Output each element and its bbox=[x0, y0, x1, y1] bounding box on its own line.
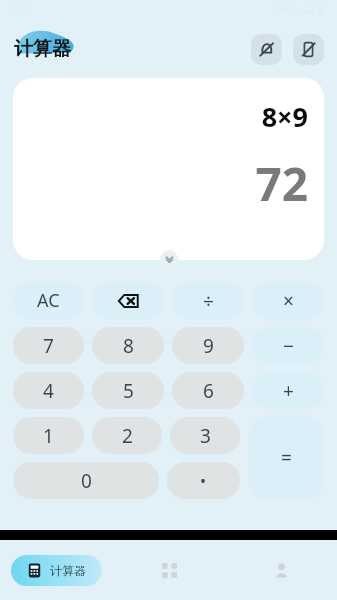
staticText: 2 bbox=[122, 423, 133, 449]
staticText: + bbox=[283, 378, 294, 404]
staticText: = bbox=[281, 445, 292, 471]
button[interactable]: 7 bbox=[13, 327, 84, 364]
button[interactable]: Mute bbox=[251, 34, 282, 65]
button[interactable]: 0 bbox=[13, 462, 159, 499]
staticText: • bbox=[200, 470, 207, 492]
staticText: 9 bbox=[203, 333, 214, 359]
staticText: AC bbox=[37, 288, 60, 313]
button[interactable]: 1 bbox=[13, 417, 84, 454]
staticText: 0 bbox=[81, 468, 92, 494]
staticText: − bbox=[283, 333, 294, 359]
button[interactable]: 5 bbox=[92, 372, 164, 409]
staticText: 8×9 bbox=[261, 98, 308, 135]
button[interactable]: = bbox=[248, 417, 324, 499]
button[interactable]: Backspace bbox=[92, 282, 164, 319]
button[interactable]: − bbox=[252, 327, 324, 364]
staticText: 3 bbox=[200, 423, 211, 449]
staticText: 6 bbox=[203, 378, 214, 404]
staticText: × bbox=[283, 288, 294, 314]
button[interactable]: Profile bbox=[225, 540, 337, 600]
staticText: 8 bbox=[123, 333, 134, 359]
staticText: 5 bbox=[123, 378, 134, 404]
button[interactable]: 9 bbox=[172, 327, 244, 364]
staticText: 4 bbox=[43, 378, 54, 404]
button[interactable]: Expand history bbox=[160, 250, 178, 268]
button[interactable]: 3 bbox=[170, 417, 240, 454]
button[interactable]: Rotate lock bbox=[293, 34, 324, 65]
button[interactable]: 4 bbox=[13, 372, 84, 409]
button[interactable]: × bbox=[252, 282, 324, 319]
staticText: 1 bbox=[43, 423, 54, 449]
button[interactable]: 8 bbox=[92, 327, 164, 364]
staticText: 计算器 bbox=[50, 563, 86, 578]
button[interactable]: 8×9 bbox=[13, 78, 324, 260]
button[interactable]: Apps bbox=[113, 540, 225, 600]
button[interactable]: + bbox=[252, 372, 324, 409]
button[interactable]: • bbox=[167, 462, 240, 499]
button[interactable]: ÷ bbox=[172, 282, 244, 319]
staticText: ÷ bbox=[203, 288, 214, 314]
button[interactable]: 6 bbox=[172, 372, 244, 409]
button[interactable]: 计算器 bbox=[11, 555, 102, 586]
button[interactable]: AC bbox=[13, 282, 84, 319]
button[interactable]: 2 bbox=[92, 417, 162, 454]
staticText: 72 bbox=[255, 152, 308, 215]
staticText: 7 bbox=[43, 333, 54, 359]
staticText: 计算器 bbox=[14, 37, 71, 61]
